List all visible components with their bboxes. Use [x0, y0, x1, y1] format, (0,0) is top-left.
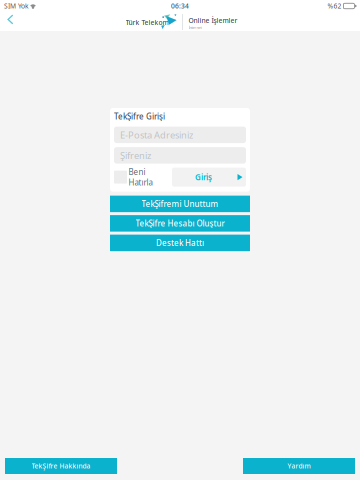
staticText: %62 [327, 2, 341, 10]
staticText: Beni [128, 166, 145, 177]
staticText: E-Posta Adresiniz [120, 129, 193, 141]
staticText: Giriş [195, 172, 212, 182]
staticText: TekŞifre Hakkında [31, 462, 90, 470]
button[interactable]: TekŞifre Hesabı Oluştur [110, 215, 250, 232]
staticText: Hatırla [128, 177, 152, 188]
staticText: SIM Yok [4, 2, 29, 10]
button[interactable]: Destek Hattı [110, 235, 250, 251]
button[interactable]: Yardım [243, 458, 355, 474]
button[interactable]: Geri [0, 12, 32, 31]
button[interactable]: Beni [114, 168, 172, 187]
staticText: 06:34 [171, 2, 189, 10]
staticText: Türk Telekom [125, 18, 168, 27]
staticText: TekŞifremi Unuttum [141, 199, 218, 209]
staticText: İnternet [188, 25, 201, 30]
button[interactable]: TekŞifremi Unuttum [110, 196, 250, 212]
staticText: Destek Hattı [156, 238, 204, 248]
staticText: Şifreniz [120, 149, 151, 162]
staticText: Yardım [287, 462, 310, 470]
staticText: Online İşlemler [188, 16, 237, 25]
staticText: TekŞifre Girişi [114, 111, 165, 122]
button[interactable]: TekŞifre Hakkında [5, 458, 117, 474]
button[interactable]: Giriş [172, 168, 246, 187]
staticText: TekŞifre Hesabı Oluştur [135, 218, 224, 229]
